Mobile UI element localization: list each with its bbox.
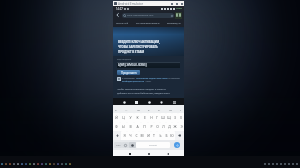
button[interactable]: У [127, 113, 134, 122]
button[interactable]: AJWEJ-WMGLK-XGWEJ [117, 62, 180, 68]
button[interactable]: store.steampowered.com [122, 13, 174, 18]
button[interactable]: Я [121, 131, 127, 140]
staticText: Е [144, 115, 146, 120]
button[interactable]: я [115, 108, 117, 111]
button[interactable]: Taskbar app [5, 163, 7, 165]
button[interactable]: Taskbar app [17, 163, 19, 165]
button[interactable]: с [180, 108, 182, 111]
staticText: Я [123, 133, 126, 138]
button[interactable]: В [127, 122, 134, 131]
button[interactable]: Backspace [175, 131, 184, 140]
button[interactable]: Ж [172, 122, 178, 131]
button[interactable]: СПИСОК ЖЕЛАЕМОГО [136, 22, 160, 25]
button[interactable]: Shift [113, 131, 121, 140]
button[interactable]: Ч [127, 131, 133, 140]
button[interactable]: в [148, 108, 150, 111]
button[interactable]: О [154, 122, 160, 131]
button[interactable]: Window control [179, 1, 184, 6]
button[interactable]: Taskbar app [41, 163, 43, 165]
button[interactable]: Taskbar app [25, 163, 27, 165]
button[interactable]: П [141, 122, 148, 131]
button[interactable]: Taskbar app [1, 163, 3, 165]
button[interactable]: Ь [157, 131, 163, 140]
button[interactable]: Taskbar app [53, 163, 55, 165]
button[interactable]: Е [141, 113, 148, 122]
button[interactable]: Й [113, 113, 120, 122]
staticText: Щ [167, 115, 171, 120]
button[interactable]: Keyboard tool [134, 100, 138, 104]
button[interactable]: Taskbar app [21, 163, 23, 165]
button[interactable]: и [158, 108, 160, 111]
button[interactable]: Taskbar app [13, 163, 15, 165]
button[interactable]: Taskbar app [45, 163, 47, 165]
button[interactable]: Taskbar app [57, 163, 59, 165]
button[interactable]: Language [129, 142, 136, 148]
button[interactable]: И [145, 131, 151, 140]
button[interactable]: не [137, 108, 140, 111]
button[interactable]: Х [178, 113, 184, 122]
button[interactable]: КОЛЛЕКЦИЯ [167, 22, 181, 25]
button[interactable]: Ш [160, 113, 166, 122]
button[interactable]: Keyboard tool [147, 100, 151, 104]
button[interactable]: Taskbar app [33, 163, 35, 165]
button[interactable]: Л [160, 122, 166, 131]
button[interactable]: Window control [169, 1, 174, 6]
button[interactable]: М [139, 131, 145, 140]
button[interactable]: Window control [174, 1, 179, 6]
staticText: В [129, 124, 132, 129]
button[interactable]: Taskbar app [65, 163, 67, 165]
button[interactable]: Space [136, 142, 170, 148]
button[interactable]: Б [163, 131, 169, 140]
staticText: 14:27 [116, 7, 123, 11]
button[interactable]: Taskbar app [61, 163, 63, 165]
staticText: Чтобы зарегистрировать продукт в Steam и [117, 88, 166, 91]
button[interactable]: Ц [120, 113, 127, 122]
button[interactable]: Ы [120, 122, 127, 131]
button[interactable]: А [134, 122, 141, 131]
button[interactable]: на [169, 108, 172, 111]
button[interactable]: С [133, 131, 139, 140]
button[interactable]: Back [115, 12, 121, 18]
button[interactable]: Enter [174, 142, 180, 148]
button[interactable]: МАГАЗИН ▾ [116, 22, 128, 25]
button[interactable]: Taskbar app [49, 163, 51, 165]
button[interactable]: Numbers [114, 142, 122, 148]
staticText: Ы [122, 124, 125, 129]
button[interactable]: З [172, 113, 178, 122]
button[interactable]: Taskbar app [69, 163, 71, 165]
button[interactable]: Taskbar app [37, 163, 39, 165]
staticText: П [143, 124, 146, 129]
button[interactable]: К [134, 113, 141, 122]
button[interactable]: — [125, 108, 128, 111]
button[interactable]: Back [165, 151, 170, 156]
button[interactable]: Ю [169, 131, 175, 140]
staticText: М [140, 133, 144, 138]
button[interactable]: Taskbar app [9, 163, 11, 165]
button[interactable]: Щ [166, 113, 172, 122]
button[interactable]: Home [146, 151, 151, 156]
button[interactable]: Г [154, 113, 160, 122]
button[interactable]: Р [148, 122, 154, 131]
button[interactable]: Recents [127, 151, 132, 156]
button[interactable]: Ф [113, 122, 120, 131]
button[interactable]: Taskbar app [29, 163, 31, 165]
button[interactable]: Т [151, 131, 157, 140]
button[interactable]: Д [166, 122, 172, 131]
button[interactable]: Keyboard tool [172, 100, 176, 104]
button[interactable]: Э [178, 122, 184, 131]
button[interactable]: Emoji [122, 142, 129, 148]
button[interactable]: Account [175, 12, 182, 19]
button[interactable]: Keyboard tool [159, 100, 163, 104]
button[interactable]: Продолжить [117, 70, 140, 75]
button[interactable]: Keyboard tool [122, 100, 126, 104]
button[interactable]: Н [148, 113, 154, 122]
